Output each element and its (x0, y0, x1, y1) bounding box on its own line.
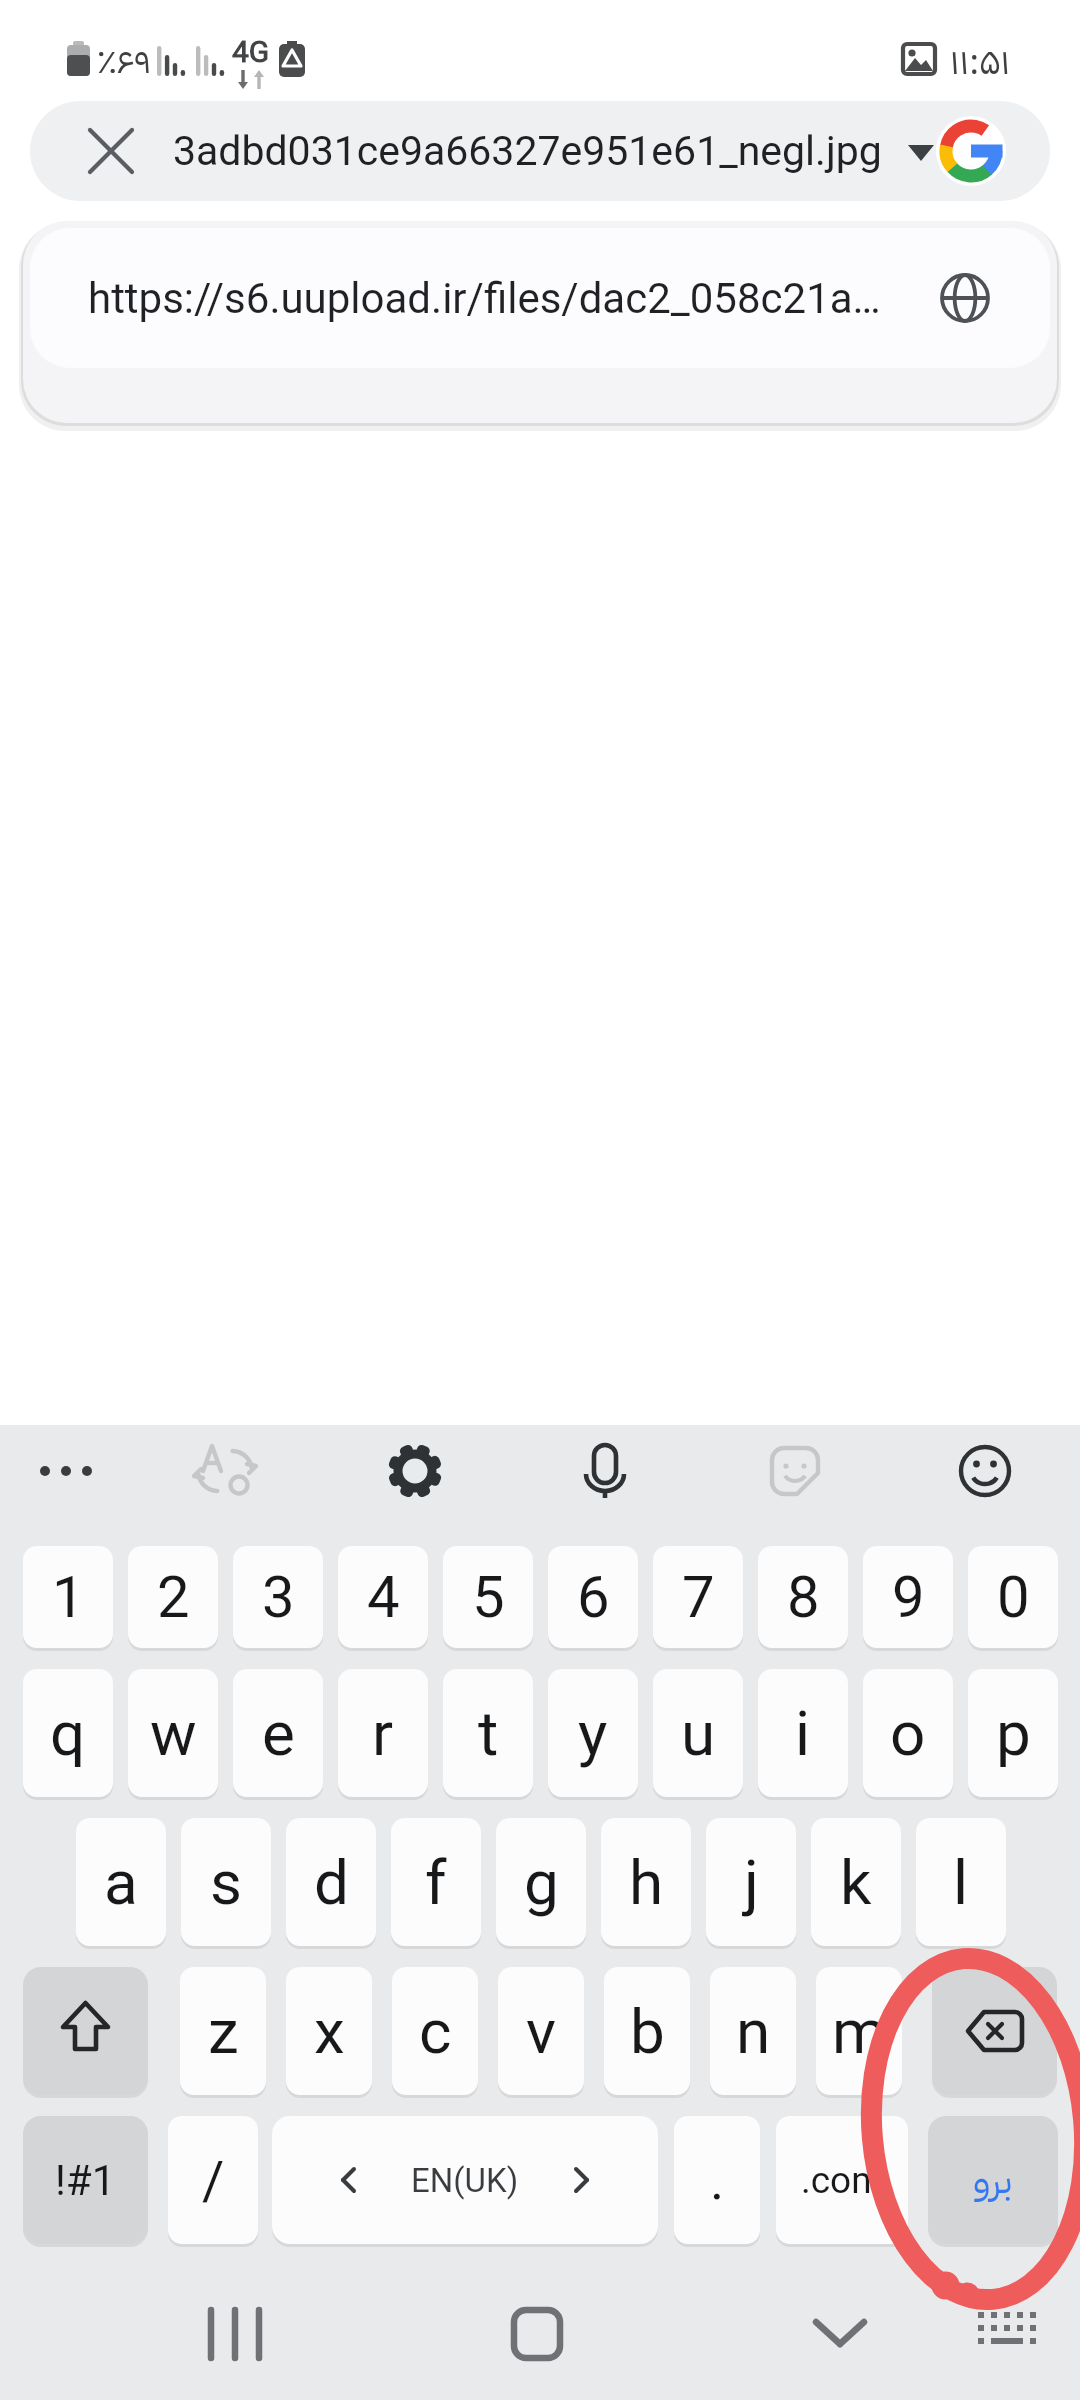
staticText: 1 (52, 1563, 85, 1631)
button[interactable]: 4 (338, 1546, 428, 1648)
staticText: 3 (262, 1563, 295, 1631)
button[interactable]: l (916, 1818, 1006, 1946)
button[interactable]: 2 (128, 1546, 218, 1648)
staticText: g (524, 1846, 559, 1919)
staticText: e (262, 1697, 295, 1770)
staticText: ٪۶۹ (97, 36, 152, 84)
staticText: i (795, 1697, 811, 1770)
button[interactable]: b (604, 1967, 690, 2095)
staticText: 2 (157, 1563, 190, 1631)
staticText: h (629, 1846, 664, 1919)
staticText: 4G (232, 34, 270, 68)
staticText: d (314, 1846, 349, 1919)
button[interactable]: h (601, 1818, 691, 1946)
button[interactable]: f (391, 1818, 481, 1946)
staticText: s (210, 1846, 242, 1919)
button[interactable]: 3 (233, 1546, 323, 1648)
button[interactable]: w (128, 1669, 218, 1797)
staticText: u (681, 1697, 716, 1770)
staticText: 6 (577, 1563, 610, 1631)
staticText: b (630, 1995, 665, 2068)
staticText: 8 (787, 1563, 820, 1631)
staticText: o (890, 1697, 926, 1770)
button[interactable]: r (338, 1669, 428, 1797)
staticText: ۱۱:۵۱ (950, 35, 1010, 83)
button[interactable] (932, 1967, 1057, 2095)
staticText: برو (973, 2152, 1013, 2209)
button[interactable]: q (23, 1669, 113, 1797)
staticText: 4 (367, 1563, 400, 1631)
button[interactable]: 7 (653, 1546, 743, 1648)
button[interactable]: z (180, 1967, 266, 2095)
button[interactable]: e (233, 1669, 323, 1797)
button[interactable]: https://s6.uupload.ir/files/dac2_058c21a… (30, 228, 1050, 368)
staticText: / (202, 2149, 225, 2212)
button[interactable]: u (653, 1669, 743, 1797)
staticText: x (314, 1995, 345, 2068)
button[interactable]: 3adbd031ce9a66327e951e61_negl.jpg (30, 101, 1050, 201)
button[interactable]: g (496, 1818, 586, 1946)
staticText: y (578, 1697, 608, 1770)
staticText: l (953, 1846, 969, 1919)
staticText: v (526, 1995, 557, 2068)
staticText: .com (801, 2159, 884, 2202)
button[interactable]: 9 (863, 1546, 953, 1648)
button[interactable]: n (710, 1967, 796, 2095)
staticText: 0 (997, 1563, 1030, 1631)
button[interactable]: d (286, 1818, 376, 1946)
button[interactable]: m (816, 1967, 902, 2095)
button[interactable] (795, 2290, 885, 2380)
button[interactable]: v (498, 1967, 584, 2095)
staticText: j (744, 1846, 759, 1919)
staticText: 5 (472, 1563, 505, 1631)
button[interactable]: 0 (968, 1546, 1058, 1648)
button[interactable]: 6 (548, 1546, 638, 1648)
staticText: w (150, 1697, 197, 1770)
button[interactable]: 1 (23, 1546, 113, 1648)
staticText: q (50, 1697, 86, 1770)
button[interactable]: 5 (443, 1546, 533, 1648)
button[interactable]: EN(UK) (272, 2116, 658, 2244)
button[interactable]: برو (928, 2116, 1058, 2244)
staticText: EN(UK) (411, 2161, 519, 2200)
button[interactable]: y (548, 1669, 638, 1797)
staticText: a (104, 1846, 138, 1919)
button[interactable]: . (674, 2116, 760, 2244)
button[interactable] (960, 2290, 1050, 2380)
button[interactable]: c (392, 1967, 478, 2095)
button[interactable]: t (443, 1669, 533, 1797)
button[interactable]: s (181, 1818, 271, 1946)
staticText: r (372, 1697, 394, 1770)
staticText: f (425, 1846, 447, 1919)
staticText: n (736, 1995, 771, 2068)
button[interactable]: k (811, 1818, 901, 1946)
staticText: p (996, 1697, 1031, 1770)
staticText: m (832, 1995, 887, 2068)
button[interactable]: o (863, 1669, 953, 1797)
button[interactable]: p (968, 1669, 1058, 1797)
button[interactable]: x (286, 1967, 372, 2095)
staticText: z (208, 1995, 239, 2068)
button[interactable]: j (706, 1818, 796, 1946)
button[interactable]: !#1 (23, 2116, 148, 2244)
button[interactable]: .com (776, 2116, 908, 2244)
staticText: t (478, 1697, 499, 1770)
staticText: c (419, 1995, 452, 2068)
button[interactable] (492, 2290, 582, 2380)
staticText: 7 (682, 1563, 715, 1631)
button[interactable]: / (168, 2116, 258, 2244)
staticText: k (840, 1846, 872, 1919)
staticText: https://s6.uupload.ir/files/dac2_058c21a… (88, 274, 881, 323)
staticText: !#1 (55, 2156, 116, 2205)
button[interactable] (23, 1967, 148, 2095)
staticText: . (710, 2149, 725, 2212)
button[interactable] (190, 2290, 280, 2380)
staticText: 3adbd031ce9a66327e951e61_negl.jpg (173, 127, 882, 175)
button[interactable]: a (76, 1818, 166, 1946)
button[interactable]: i (758, 1669, 848, 1797)
staticText: 9 (892, 1563, 925, 1631)
button[interactable]: 8 (758, 1546, 848, 1648)
